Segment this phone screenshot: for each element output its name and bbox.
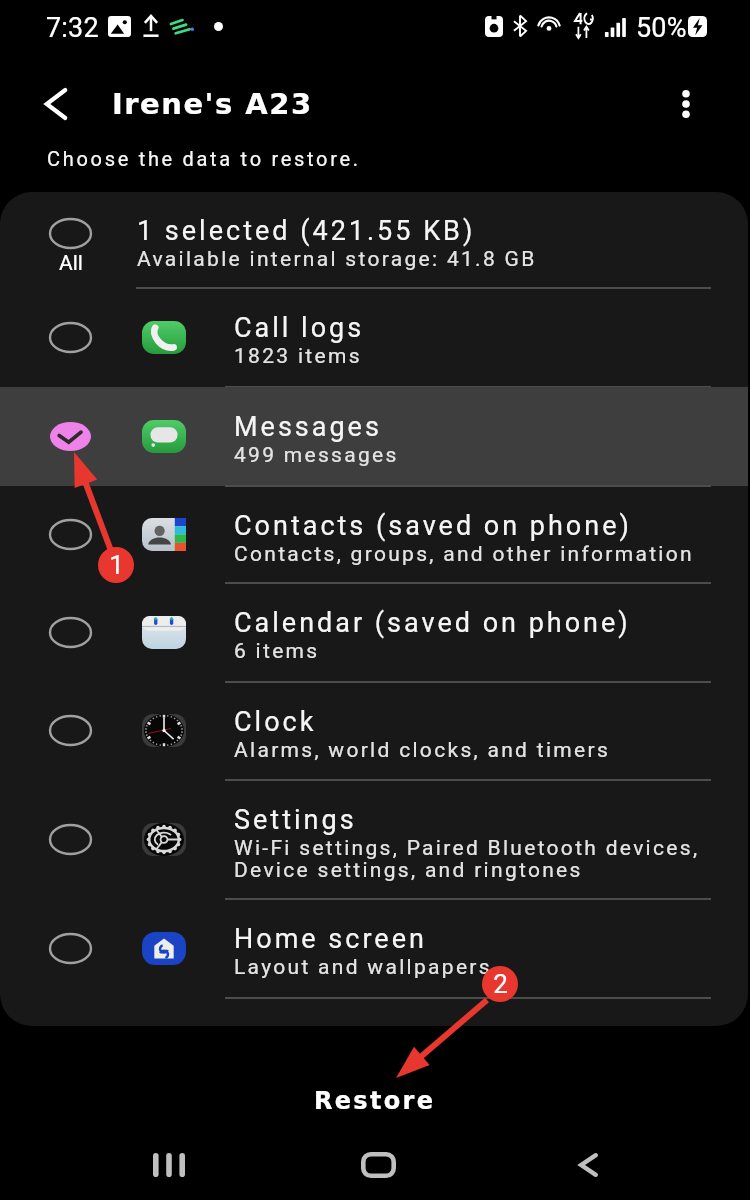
staticText: Restore [314, 1087, 436, 1115]
staticText: 1 [109, 550, 124, 580]
staticText: 1823 items [234, 344, 362, 369]
staticText: 6 items [234, 639, 320, 664]
staticText: 7:32 [46, 12, 99, 44]
staticText: 50% [636, 12, 687, 44]
button[interactable]: Home [345, 1132, 411, 1198]
staticText: Wi-Fi settings, Paired Bluetooth devices… [234, 836, 700, 861]
staticText: Choose the data to restore. [47, 147, 361, 170]
button[interactable]: Messages [0, 387, 748, 486]
staticText: Settings [234, 804, 357, 836]
button[interactable]: Settings [0, 780, 748, 899]
staticText: Irene's A23 [112, 87, 313, 121]
button[interactable]: Back [555, 1132, 621, 1198]
staticText: Layout and wallpapers [234, 955, 492, 980]
staticText: 2 [493, 969, 508, 999]
staticText: Contacts (saved on phone) [234, 510, 632, 542]
button[interactable]: More options [661, 79, 711, 129]
button[interactable]: Calendar (saved on phone) [0, 583, 748, 682]
button[interactable]: Home screen [0, 899, 748, 998]
staticText: Alarms, world clocks, and timers [234, 738, 611, 763]
staticText: Call logs [234, 312, 365, 344]
button[interactable]: Clock [0, 682, 748, 780]
staticText: All [59, 251, 83, 276]
button[interactable]: Recent apps [136, 1132, 202, 1198]
staticText: Home screen [234, 923, 427, 955]
button[interactable]: Contacts (saved on phone) [0, 486, 748, 583]
staticText: Clock [234, 706, 317, 738]
button[interactable]: Call logs [0, 288, 748, 387]
button[interactable]: All [0, 192, 748, 288]
staticText: 1 selected (421.55 KB) [137, 215, 476, 247]
staticText: Calendar (saved on phone) [234, 607, 631, 639]
staticText: Contacts, groups, and other information [234, 542, 694, 567]
staticText: Available internal storage: 41.8 GB [137, 247, 537, 272]
button[interactable]: Restore [0, 1078, 750, 1124]
staticText: Device settings, and ringtones [234, 858, 583, 883]
staticText: Messages [234, 411, 382, 443]
staticText: 499 messages [234, 443, 399, 468]
button[interactable]: Back [28, 76, 84, 132]
